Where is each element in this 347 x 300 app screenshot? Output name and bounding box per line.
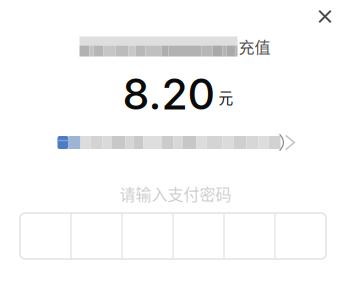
staticText: 充值: [238, 35, 270, 58]
button[interactable]: Close: [307, 0, 343, 33]
staticText: 请输入支付密码: [119, 182, 231, 205]
staticText: 元: [218, 87, 233, 108]
button[interactable]: [53, 131, 298, 153]
staticText: 8.20: [122, 68, 215, 120]
